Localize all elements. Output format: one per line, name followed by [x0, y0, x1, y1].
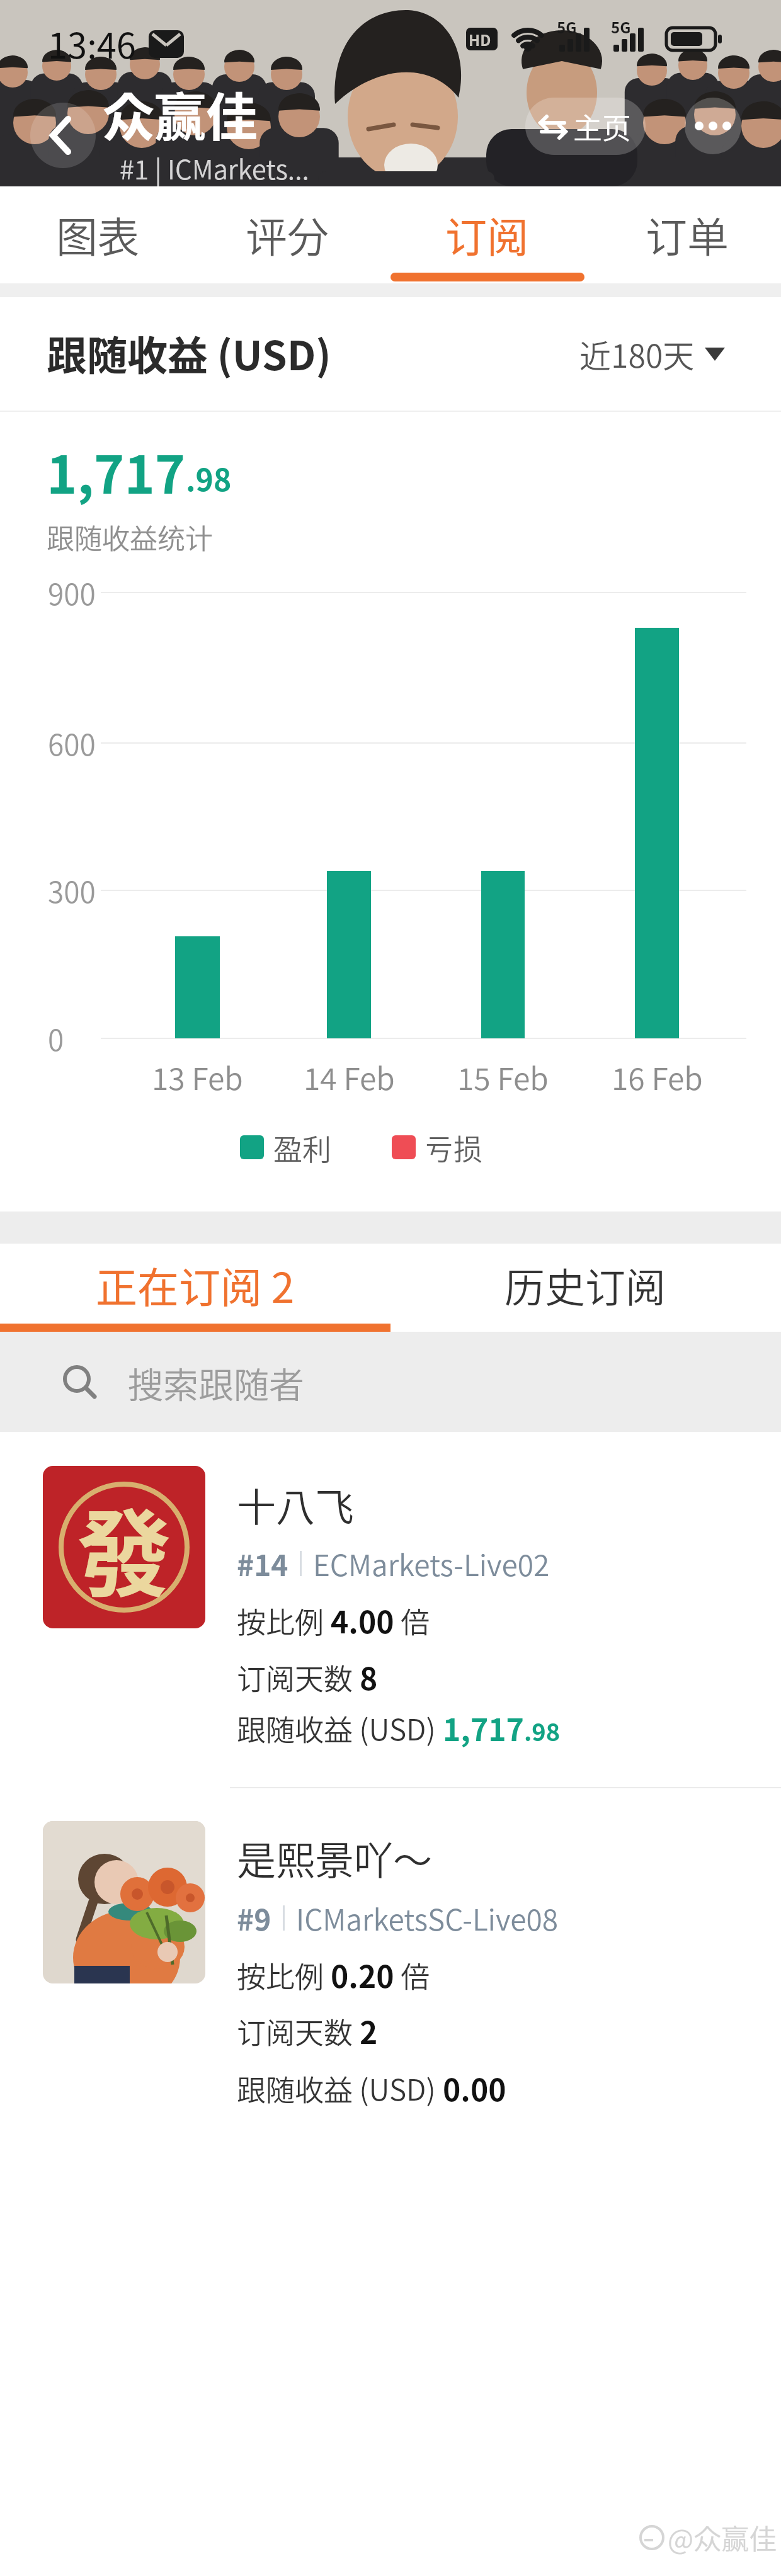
staticText: 近180天	[579, 331, 695, 377]
button[interactable]	[0, 1244, 390, 1324]
staticText: 正在订阅 2	[96, 1254, 295, 1315]
staticText: ICMarketsSC-Live08	[296, 1897, 559, 1939]
staticText: 13 Feb	[152, 1055, 243, 1099]
staticText: 600	[48, 722, 96, 764]
staticText: 订单	[646, 204, 729, 264]
staticText: 14 Feb	[304, 1055, 395, 1099]
button[interactable]: 是熙景吖～	[0, 1788, 781, 2141]
staticText: HD	[469, 28, 491, 50]
staticText: 5G	[557, 16, 577, 35]
staticText: 主页	[573, 105, 631, 147]
staticText: 跟随收益 (USD)	[237, 2067, 443, 2109]
button[interactable]	[212, 186, 363, 283]
staticText: 按比例	[237, 1954, 331, 1996]
staticText: 亏损	[425, 1126, 482, 1169]
button[interactable]	[612, 186, 763, 283]
staticText: .98	[186, 456, 232, 500]
staticText: 0	[48, 1018, 64, 1060]
button[interactable]	[30, 103, 96, 168]
staticText: 图表	[56, 204, 139, 264]
staticText: 众赢佳	[103, 76, 258, 151]
staticText: 0.20	[331, 1953, 394, 1997]
staticText: @众赢佳	[668, 2517, 777, 2558]
staticText: .98	[524, 1713, 561, 1748]
staticText: #9	[237, 1897, 271, 1939]
staticText: 發	[77, 1479, 172, 1616]
button[interactable]: 發	[0, 1432, 781, 1788]
staticText: 评分	[246, 204, 329, 264]
button[interactable]	[685, 98, 741, 154]
button[interactable]	[390, 1244, 781, 1324]
staticText: 4.00	[331, 1598, 394, 1642]
staticText: 订阅	[445, 204, 528, 264]
staticText: 16 Feb	[612, 1055, 703, 1099]
staticText: 按比例	[237, 1599, 331, 1642]
staticText: 2	[360, 2009, 378, 2053]
staticText: 15 Feb	[457, 1055, 549, 1099]
staticText: 0.00	[443, 2066, 506, 2110]
staticText: 跟随收益 (USD)	[237, 1707, 443, 1749]
button[interactable]: 近180天	[579, 310, 725, 398]
staticText: 13:46	[48, 18, 136, 69]
button[interactable]: 搜索跟随者	[0, 1332, 781, 1432]
staticText: 倍	[394, 1599, 430, 1642]
staticText: 跟随收益统计	[47, 517, 213, 557]
staticText: 订阅天数	[237, 2010, 360, 2052]
staticText: 历史订阅	[505, 1256, 666, 1314]
staticText: 5G	[611, 16, 631, 35]
staticText: 是熙景吖～	[237, 1830, 433, 1887]
button[interactable]	[411, 186, 562, 283]
staticText: 1,717	[443, 1706, 524, 1750]
button[interactable]: 主页	[525, 98, 646, 155]
staticText: #1 | ICMarkets...	[120, 149, 309, 187]
staticText: 1,717	[47, 434, 186, 509]
staticText: 跟随收益 (USD)	[47, 324, 331, 382]
staticText: ECMarkets-Live02	[313, 1543, 550, 1585]
staticText: 300	[48, 870, 96, 912]
staticText: 盈利	[273, 1126, 331, 1169]
staticText: 订阅天数	[237, 1656, 360, 1698]
staticText: 搜索跟随者	[128, 1357, 304, 1408]
staticText: 8	[360, 1655, 378, 1699]
staticText: #14	[237, 1543, 288, 1585]
staticText: 900	[48, 572, 96, 614]
button[interactable]	[22, 186, 173, 283]
staticText: 十八飞	[237, 1477, 355, 1533]
staticText: 倍	[394, 1954, 430, 1996]
